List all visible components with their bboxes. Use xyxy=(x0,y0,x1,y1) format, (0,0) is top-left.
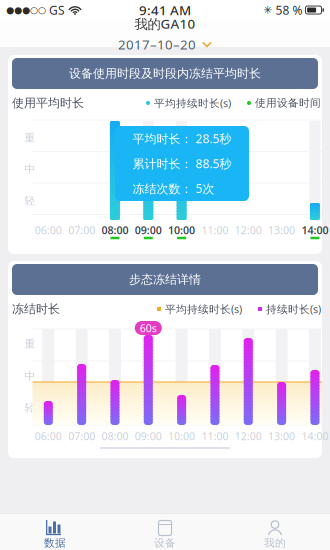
staticText: 9:41 AM xyxy=(139,1,191,19)
staticText: 我的 xyxy=(264,536,286,549)
button[interactable]: 数据 xyxy=(0,513,110,550)
staticText: 58 % xyxy=(272,2,305,18)
staticText: 轻 xyxy=(24,401,35,414)
staticText: 06:00 xyxy=(35,223,62,237)
staticText: 平均持续时长(s) xyxy=(154,96,231,110)
staticText: 11:00 xyxy=(201,223,228,237)
staticText: 12:00 xyxy=(235,223,262,237)
staticText: 06:00 xyxy=(35,429,62,443)
staticText: 重 xyxy=(24,131,35,144)
staticText: 设备使用时段及时段内冻结平均时长 xyxy=(69,66,261,81)
staticText: 11:00 xyxy=(201,429,228,443)
staticText: 冻结时长 xyxy=(12,302,60,316)
staticText: 中 xyxy=(24,162,35,175)
staticText: ●●●○○ xyxy=(6,5,46,15)
staticText: 07:00 xyxy=(68,429,95,443)
staticText: ✳ xyxy=(263,4,272,16)
staticText: 09:00 xyxy=(135,223,162,237)
staticText: 平均时长： 28.5秒 xyxy=(132,131,231,146)
staticText: 12:00 xyxy=(235,429,262,443)
button[interactable]: 设备 xyxy=(110,513,220,550)
staticText: 我的GA10 xyxy=(134,15,195,32)
staticText: 平均持续时长(s) xyxy=(165,302,242,316)
staticText: 重 xyxy=(24,337,35,350)
staticText: 轻 xyxy=(24,194,35,207)
staticText: 10:00 xyxy=(168,429,195,443)
staticText: GS xyxy=(46,2,65,18)
staticText: 设备 xyxy=(154,536,176,549)
button[interactable]: 我的 xyxy=(220,513,330,550)
staticText: 持续时长(s) xyxy=(266,302,321,316)
staticText: 使用平均时长 xyxy=(12,96,84,110)
staticText: 14:00 xyxy=(301,429,328,443)
staticText: 使用设备时间 xyxy=(255,96,321,109)
staticText: 08:00 xyxy=(101,429,128,443)
staticText: 07:00 xyxy=(68,223,95,237)
button[interactable]: 2017–10–20 xyxy=(114,34,216,54)
staticText: 2017–10–20 xyxy=(118,35,196,53)
staticText: 08:00 xyxy=(101,223,128,237)
staticText: 60s xyxy=(140,321,157,335)
staticText: 累计时长： 88.5秒 xyxy=(132,155,231,171)
staticText: 中 xyxy=(24,369,35,382)
staticText: 14:00 xyxy=(301,223,328,237)
staticText: 13:00 xyxy=(268,429,295,443)
staticText: 冻结次数： 5次 xyxy=(132,180,214,196)
staticText: 10:00 xyxy=(168,223,195,237)
staticText: 步态冻结详情 xyxy=(129,272,201,287)
staticText: 13:00 xyxy=(268,223,295,237)
staticText: 09:00 xyxy=(135,429,162,443)
staticText: 数据 xyxy=(44,536,66,549)
